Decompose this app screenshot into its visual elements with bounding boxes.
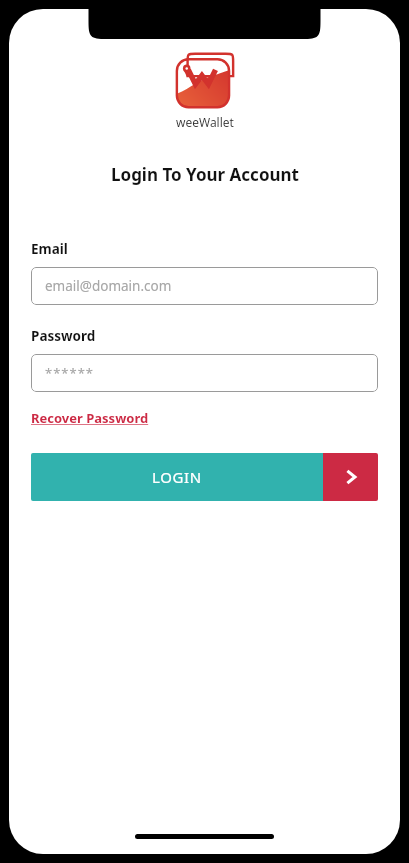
staticText: Login To Your Account [111,163,299,186]
staticText: LOGIN [152,467,202,487]
staticText: Recover Password [31,409,149,427]
button[interactable]: ****** [31,354,378,392]
button[interactable]: LOGIN [31,453,323,501]
staticText: email@domain.com [45,277,172,295]
staticText: Email [31,240,68,258]
staticText: weeWallet [176,114,234,130]
staticText: Password [31,327,96,345]
button[interactable]: Continue [323,453,378,501]
staticText: ****** [45,364,94,382]
button[interactable]: Recover Password [31,409,149,427]
button[interactable]: email@domain.com [31,267,378,305]
